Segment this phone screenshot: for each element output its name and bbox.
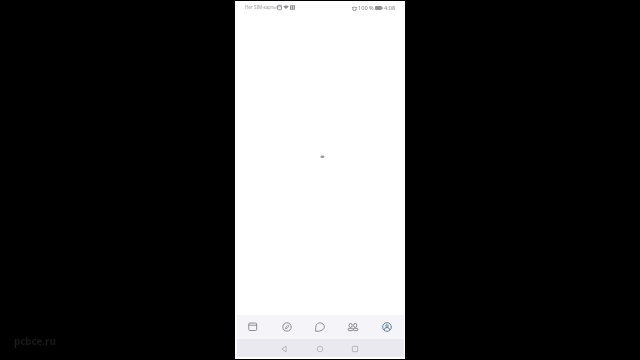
button[interactable]: Home [303,339,337,357]
staticText: 100 % [358,4,374,12]
button[interactable]: Messages [305,315,335,340]
button[interactable]: People [338,315,368,340]
staticText: 4:08 [384,4,396,12]
button[interactable]: Explore [272,315,302,340]
button[interactable]: Recents [338,339,372,357]
staticText: pcbce.ru [14,335,56,348]
staticText: Нет SIM-карты [245,4,277,10]
button[interactable]: Back [267,339,301,357]
button[interactable]: Feed [238,315,268,340]
button[interactable]: Profile [372,315,402,340]
